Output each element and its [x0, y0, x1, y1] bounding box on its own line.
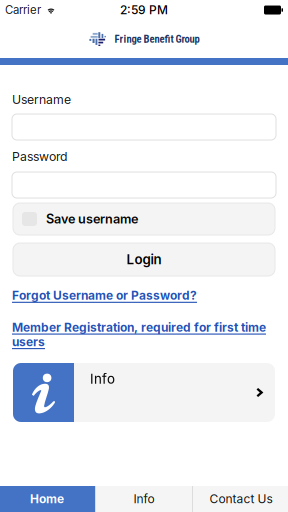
- staticText: Home: [30, 492, 64, 506]
- staticText: Carrier: [5, 3, 41, 17]
- staticText: Username: [12, 92, 71, 107]
- staticText: Info: [90, 371, 115, 387]
- button[interactable]: Info: [96, 486, 192, 512]
- staticText: Login: [126, 251, 161, 267]
- button[interactable]: Member Registration, required for first …: [12, 320, 276, 347]
- staticText: 2:59 PM: [120, 3, 168, 17]
- staticText: Contact Us: [209, 492, 272, 506]
- button[interactable]: Login: [13, 243, 275, 276]
- staticText: Password: [12, 149, 68, 164]
- button[interactable]: Info: [13, 363, 275, 422]
- button[interactable]: Save username: [13, 203, 275, 235]
- staticText: Info: [133, 492, 154, 506]
- staticText: Save username: [46, 211, 138, 227]
- button[interactable]: Contact Us: [193, 486, 288, 512]
- staticText: Forgot Username or Password?: [12, 288, 197, 303]
- button[interactable]: Forgot Username or Password?: [12, 289, 276, 302]
- staticText: Member Registration, required for first …: [12, 320, 266, 349]
- button[interactable]: Home: [0, 486, 95, 512]
- staticText: Fringe Benefit Group: [114, 33, 199, 45]
